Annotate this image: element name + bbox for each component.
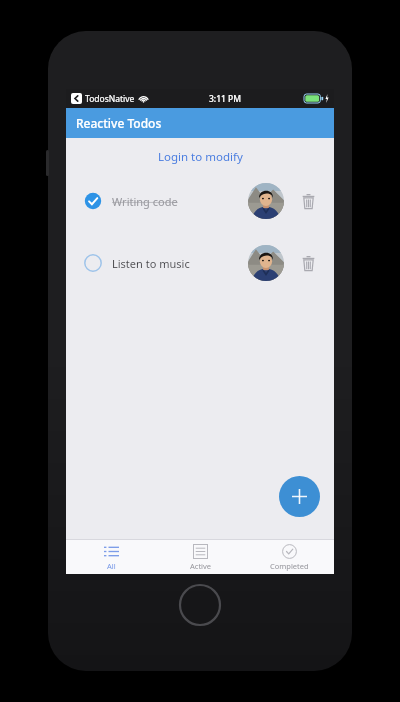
staticText: Active: [190, 561, 212, 571]
staticText: Reactive Todos: [76, 115, 162, 131]
staticText: Login to modify: [158, 149, 243, 165]
button[interactable]: Mark incomplete: [66, 182, 334, 220]
button[interactable]: Login to modify: [150, 146, 251, 168]
staticText: Writing code: [112, 194, 178, 209]
button[interactable]: Add todo: [279, 476, 320, 517]
button[interactable]: All: [66, 540, 156, 574]
staticText: 3:11 PM: [209, 93, 242, 105]
staticText: Listen to music: [112, 256, 190, 271]
staticText: Completed: [270, 561, 309, 571]
staticText: All: [107, 561, 116, 571]
button[interactable]: Delete: [296, 251, 320, 275]
button[interactable]: Delete: [296, 189, 320, 213]
button[interactable]: Mark complete: [66, 244, 334, 282]
button[interactable]: Active: [156, 540, 245, 574]
staticText: TodosNative: [85, 93, 135, 105]
button[interactable]: Mark complete: [82, 252, 104, 274]
button[interactable]: Completed: [245, 540, 334, 574]
button[interactable]: Mark incomplete: [82, 190, 104, 212]
